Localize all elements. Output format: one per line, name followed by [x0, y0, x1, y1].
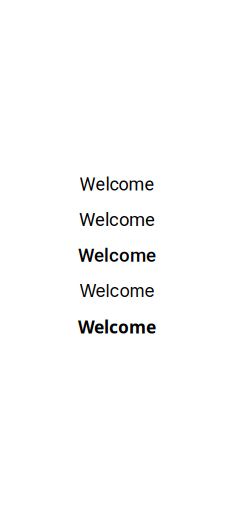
staticText: Welcome	[78, 315, 156, 338]
staticText: Welcome	[79, 280, 154, 301]
staticText: Welcome	[79, 209, 155, 230]
staticText: Welcome	[79, 174, 154, 195]
staticText: Welcome	[78, 244, 156, 266]
